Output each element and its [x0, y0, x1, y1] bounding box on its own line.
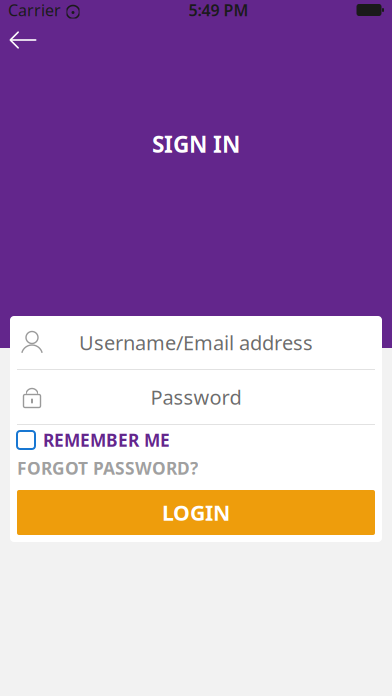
- staticText: Password: [150, 384, 241, 410]
- button[interactable]: FORGOT PASSWORD?: [10, 455, 382, 481]
- staticText: SIGN IN: [152, 129, 240, 159]
- staticText: LOGIN: [162, 498, 230, 527]
- button[interactable]: REMEMBER ME: [10, 425, 382, 455]
- button[interactable]: Username/Email address: [10, 316, 382, 369]
- staticText: Carrier: [8, 0, 61, 21]
- staticText: FORGOT PASSWORD?: [17, 456, 198, 479]
- button[interactable]: Password: [10, 370, 382, 424]
- staticText: Username/Email address: [79, 329, 313, 356]
- staticText: REMEMBER ME: [43, 428, 170, 451]
- button[interactable]: Back: [0, 20, 46, 60]
- button[interactable]: LOGIN: [17, 490, 375, 535]
- staticText: 5:49 PM: [188, 0, 248, 21]
